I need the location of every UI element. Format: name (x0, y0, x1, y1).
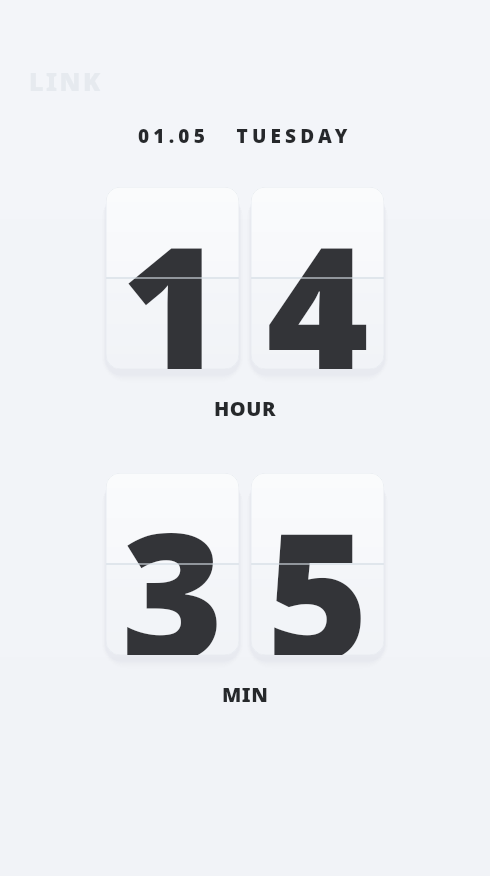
staticText: 4 (266, 187, 369, 369)
staticText: HOUR (214, 395, 276, 422)
staticText: MIN (222, 681, 269, 708)
staticText: LINK (29, 64, 103, 98)
button[interactable]: 3 (106, 473, 239, 655)
button[interactable]: 5 (251, 473, 384, 655)
button[interactable]: 4 (251, 187, 384, 369)
staticText: 1 (121, 187, 224, 369)
staticText: 5 (266, 473, 369, 655)
button[interactable]: 01.05 TUESDAY (134, 121, 356, 151)
button[interactable]: 1 (106, 187, 239, 369)
staticText: 3 (121, 473, 224, 655)
button[interactable]: LINK (29, 64, 103, 98)
